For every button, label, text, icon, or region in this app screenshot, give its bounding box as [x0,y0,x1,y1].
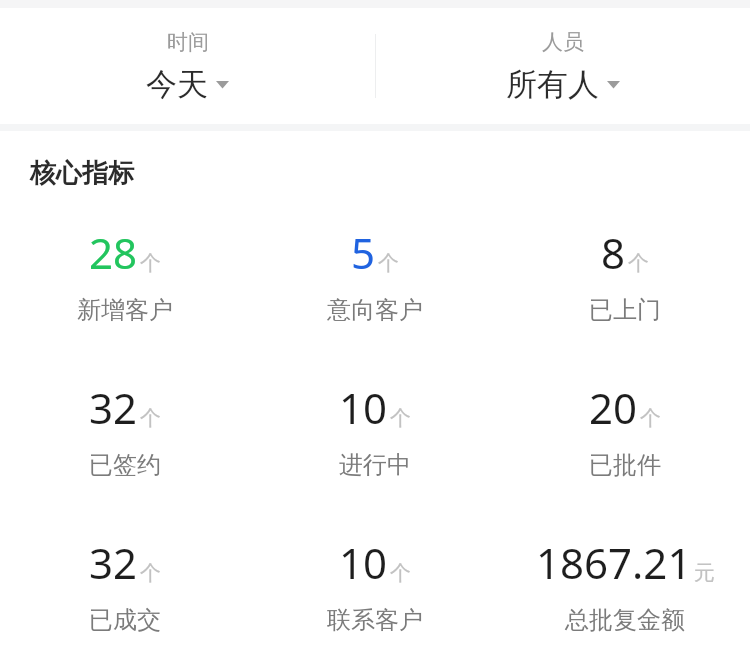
staticText: 个 [640,405,661,431]
staticText: 已签约 [89,450,161,480]
other: Dropdown [607,80,620,89]
staticText: 进行中 [339,450,411,480]
staticText: 新增客户 [77,295,173,325]
button[interactable]: 20 [500,377,750,482]
staticText: 已成交 [89,605,161,635]
button[interactable]: 5 [250,222,500,327]
button[interactable]: 10 [250,532,500,637]
button[interactable]: 10 [250,377,500,482]
staticText: 1867.21 [536,534,692,591]
staticText: 个 [140,560,161,586]
button[interactable]: 1867.21 [500,532,750,637]
staticText: 个 [378,250,399,276]
staticText: 个 [390,560,411,586]
staticText: 28 [89,224,138,281]
staticText: 32 [89,534,138,591]
staticText: 5 [351,224,376,281]
staticText: 人员 [542,29,584,55]
button[interactable]: 8 [500,222,750,327]
staticText: 8 [601,224,626,281]
staticText: 已批件 [589,450,661,480]
staticText: 所有人 [506,65,599,104]
staticText: 10 [339,379,388,436]
staticText: 个 [140,405,161,431]
button[interactable]: 32 [0,532,250,637]
staticText: 个 [628,250,649,276]
button[interactable]: 32 [0,377,250,482]
button[interactable]: 时间 [0,8,375,124]
staticText: 核心指标 [30,157,134,190]
staticText: 时间 [167,29,209,55]
staticText: 意向客户 [327,295,423,325]
staticText: 元 [694,560,715,586]
button[interactable]: 人员 [375,8,750,124]
staticText: 今天 [146,65,208,104]
staticText: 20 [589,379,638,436]
staticText: 联系客户 [327,605,423,635]
staticText: 已上门 [589,295,661,325]
staticText: 10 [339,534,388,591]
staticText: 个 [140,250,161,276]
staticText: 总批复金额 [565,605,685,635]
button[interactable]: 28 [0,222,250,327]
other: Dropdown [216,80,229,89]
staticText: 个 [390,405,411,431]
staticText: 32 [89,379,138,436]
